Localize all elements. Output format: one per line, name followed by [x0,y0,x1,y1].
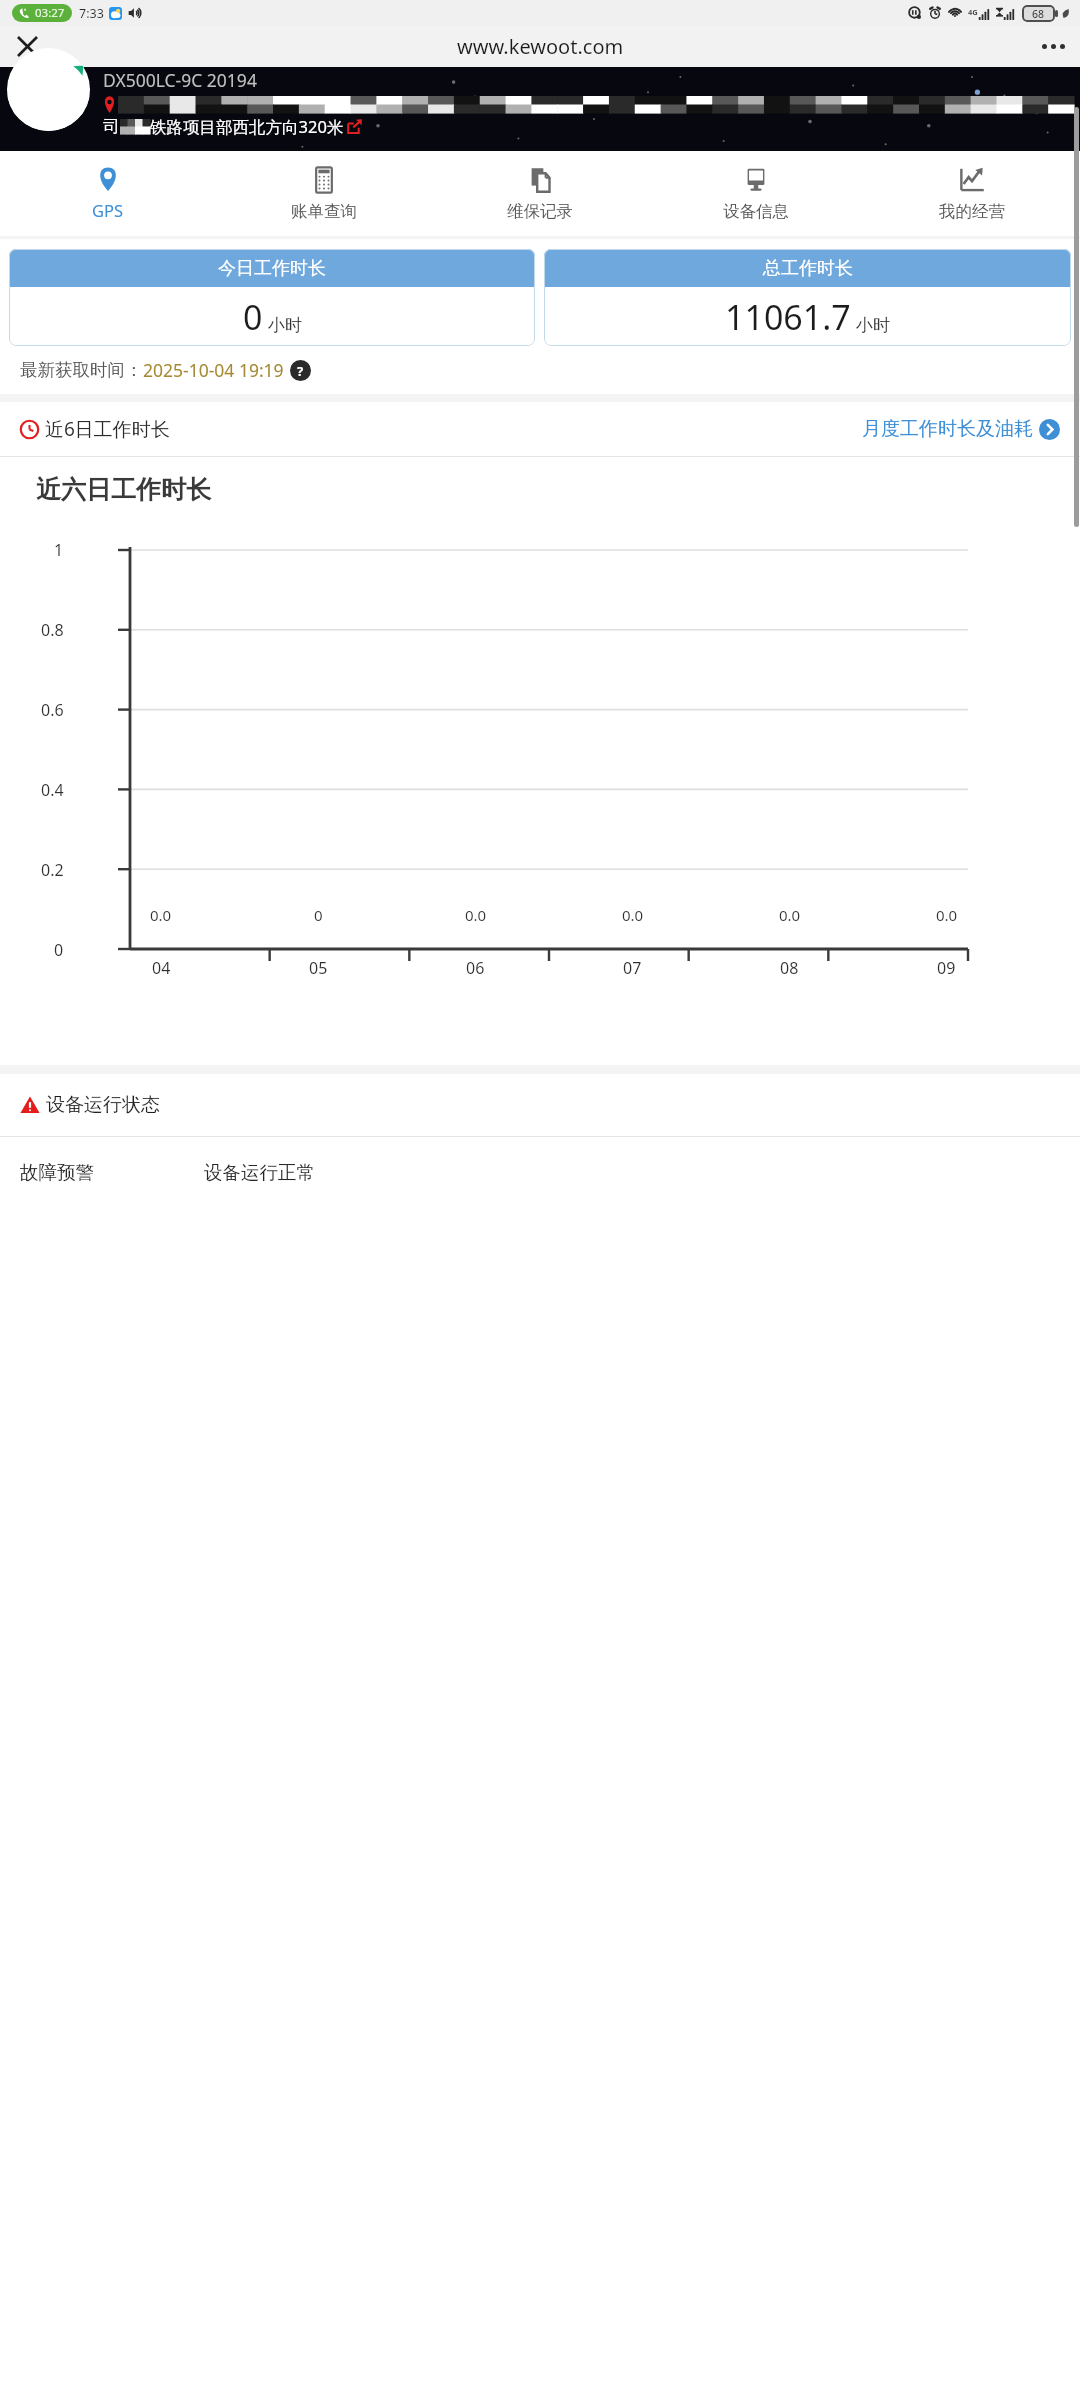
staticText: 0.0 [936,905,958,925]
button[interactable]: 设备信息 [648,151,864,236]
staticText: 小时 [856,315,890,336]
staticText: 设备运行正常 [204,1161,315,1184]
staticText: 0.6 [41,699,64,721]
button[interactable]: 今日工作时长 [9,249,535,346]
staticText: 2025-10-04 19:19 [143,358,284,382]
staticText: 近六日工作时长 [36,474,211,505]
button[interactable]: 账单查询 [216,151,432,236]
staticText: 0.0 [622,905,644,925]
staticText: 设备运行状态 [46,1093,160,1117]
button[interactable]: 月度工作时长及油耗 [862,417,1060,441]
staticText: 设备信息 [723,201,789,222]
staticText: 0.0 [150,905,172,925]
staticText: 0.0 [779,905,801,925]
staticText: 0.8 [41,619,64,641]
staticText: 11061.7 [725,294,851,340]
staticText: GPS [92,199,124,221]
staticText: 0.0 [465,905,487,925]
button[interactable]: Help [290,360,311,381]
button[interactable]: More options [1030,26,1076,67]
staticText: ? [297,362,304,380]
staticText: 我的经营 [939,201,1005,222]
button[interactable]: 故障预警 [0,1137,1080,1207]
staticText: 今日工作时长 [218,257,326,280]
button[interactable]: Close [4,26,50,67]
staticText: 7:33 [79,5,104,22]
staticText: 小时 [268,315,302,336]
button[interactable]: 维保记录 [432,151,648,236]
staticText: 1 [54,539,64,561]
staticText: 0.4 [41,779,64,801]
staticText: 07 [623,957,642,979]
staticText: 近6日工作时长 [45,416,170,442]
button[interactable]: GPS [0,151,216,236]
staticText: DX500LC-9C 20194 [103,68,257,92]
staticText: 最新获取时间： [20,359,143,381]
staticText: 0 [54,939,64,961]
staticText: 68 [1032,7,1045,21]
staticText: 4G [968,7,978,17]
staticText: 故障预警 [20,1161,94,1184]
staticText: 账单查询 [291,201,357,222]
button[interactable]: 总工作时长 [544,249,1071,346]
staticText: 月度工作时长及油耗 [862,417,1033,441]
staticText: 08 [780,957,799,979]
staticText: 09 [937,957,956,979]
staticText: 维保记录 [507,201,573,222]
staticText: 总工作时长 [763,257,853,280]
staticText: 0.2 [41,859,64,881]
staticText: 0 [314,905,323,925]
staticText: www.kewoot.com [457,33,624,60]
button[interactable]: 我的经营 [864,151,1080,236]
staticText: 06 [466,957,485,979]
staticText: 0 [243,294,263,340]
staticText: 司 [103,116,120,137]
staticText: 05 [309,957,328,979]
staticText: 03:27 [35,5,65,21]
staticText: 铁路项目部西北方向320米 [150,115,344,138]
staticText: 04 [152,957,171,979]
